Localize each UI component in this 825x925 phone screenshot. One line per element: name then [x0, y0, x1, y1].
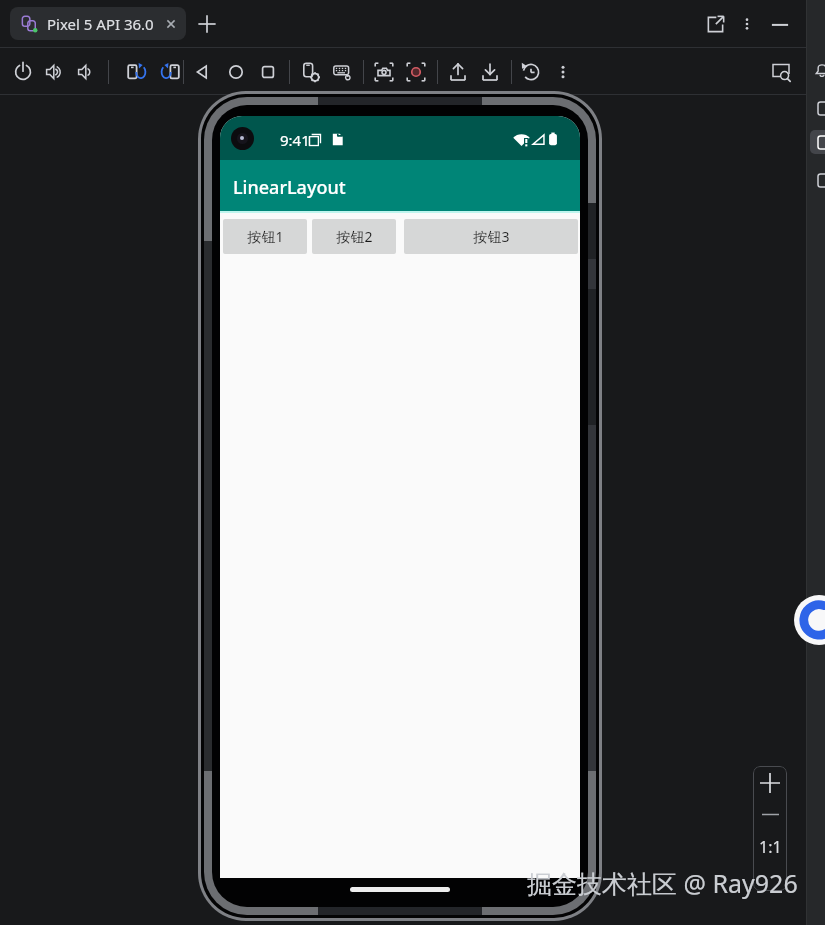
staticText: Pixel 5 API 36.0 — [47, 14, 154, 34]
button[interactable]: Volume down — [71, 56, 103, 88]
button[interactable]: Back — [187, 56, 219, 88]
button[interactable]: Actual size — [753, 831, 787, 863]
button[interactable]: Open externally — [699, 8, 731, 40]
button[interactable]: Inspect layout — [765, 56, 797, 88]
button[interactable]: Keyboard — [327, 56, 359, 88]
button[interactable]: Running devices — [810, 130, 825, 154]
staticText: 按钮3 — [473, 227, 510, 246]
button[interactable]: Minimize — [764, 8, 796, 40]
button[interactable]: Device manager — [810, 96, 825, 120]
button[interactable]: Upload file — [442, 56, 474, 88]
button[interactable]: New tab — [195, 12, 219, 36]
button[interactable]: Device settings — [295, 56, 327, 88]
staticText: LinearLayout — [233, 175, 346, 200]
staticText: 掘金技术社区 @ Ray926 — [527, 866, 798, 900]
button[interactable]: Zoom out — [753, 799, 787, 829]
button[interactable]: 按钮1 — [223, 219, 307, 254]
button[interactable]: Download file — [474, 56, 506, 88]
button[interactable]: Home — [220, 56, 252, 88]
staticText: 9:41 — [280, 130, 310, 150]
button[interactable]: More options — [731, 8, 763, 40]
button[interactable]: Volume up — [39, 56, 71, 88]
button[interactable]: Emulator — [810, 168, 825, 192]
button[interactable]: 按钮2 — [312, 219, 396, 254]
button[interactable]: More — [547, 56, 579, 88]
button[interactable]: History — [515, 56, 547, 88]
staticText: 按钮1 — [247, 227, 284, 246]
button[interactable]: Rotate left — [121, 56, 153, 88]
staticText: 按钮2 — [336, 227, 373, 246]
button[interactable]: Overview — [252, 56, 284, 88]
button[interactable]: Record screen — [400, 56, 432, 88]
button[interactable]: Rotate right — [154, 56, 186, 88]
staticText: 1:1 — [759, 836, 782, 858]
button[interactable]: Power — [7, 56, 39, 88]
button[interactable]: Close tab — [162, 15, 180, 33]
button[interactable]: Juejin — [794, 595, 825, 645]
button[interactable]: 按钮3 — [404, 219, 578, 254]
button[interactable]: Notifications — [810, 58, 825, 82]
button[interactable]: Pixel 5 API 36.0 — [10, 7, 186, 40]
button[interactable]: Screenshot — [368, 56, 400, 88]
button[interactable]: Zoom in — [753, 766, 787, 799]
